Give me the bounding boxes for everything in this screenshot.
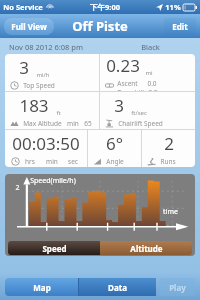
staticText: Speed(mile/h) bbox=[30, 176, 76, 186]
staticText: Speed bbox=[42, 243, 67, 254]
staticText: 2 bbox=[15, 183, 20, 193]
staticText: Full View bbox=[11, 21, 47, 32]
staticText: Angle bbox=[106, 157, 124, 166]
staticText: Ascent bbox=[117, 79, 138, 88]
staticText: Black bbox=[141, 42, 160, 52]
staticText: ft/sec bbox=[131, 109, 147, 117]
button[interactable]: Play bbox=[159, 278, 195, 296]
staticText: 下午9:00 bbox=[90, 2, 120, 12]
staticText: Max Altitude bbox=[23, 119, 62, 128]
staticText: time bbox=[163, 207, 178, 217]
staticText: 6° bbox=[106, 132, 123, 155]
staticText: mi/h bbox=[36, 71, 50, 79]
staticText: Chairlift Speed bbox=[118, 119, 163, 128]
staticText: Runs bbox=[160, 157, 176, 166]
staticText: Edit bbox=[172, 21, 188, 32]
staticText: 65 bbox=[84, 119, 92, 128]
button[interactable]: Edit bbox=[164, 18, 196, 35]
staticText: 11% bbox=[165, 2, 181, 12]
staticText: sec bbox=[68, 157, 78, 166]
staticText: 00:03:50 bbox=[12, 132, 80, 155]
staticText: ft bbox=[56, 109, 61, 117]
staticText: hrs bbox=[25, 157, 35, 166]
staticText: 0.2 bbox=[148, 88, 158, 91]
staticText: mi bbox=[145, 69, 153, 77]
staticText: 2 bbox=[164, 132, 174, 155]
button[interactable]: Speed bbox=[8, 241, 100, 255]
staticText: 0.0 bbox=[147, 79, 157, 88]
staticText: Downhill bbox=[117, 88, 144, 91]
staticText: Nov 08 2012 6:08 pm bbox=[9, 42, 83, 52]
button[interactable]: Full View bbox=[4, 18, 54, 35]
staticText: 3 bbox=[19, 56, 29, 79]
button[interactable]: Data bbox=[79, 278, 156, 296]
staticText: Map bbox=[33, 282, 51, 293]
staticText: min bbox=[46, 157, 58, 166]
staticText: Data bbox=[108, 282, 127, 293]
staticText: 183 bbox=[19, 94, 49, 117]
staticText: 3 bbox=[114, 94, 124, 117]
staticText: 0.23 bbox=[106, 54, 140, 77]
staticText: Play bbox=[169, 282, 186, 293]
staticText: Top Speed bbox=[23, 81, 55, 90]
button[interactable]: Map bbox=[5, 278, 78, 296]
staticText: No Service bbox=[3, 2, 43, 12]
staticText: Off Piste bbox=[72, 17, 128, 35]
staticText: min bbox=[67, 119, 79, 128]
button[interactable]: Altitude bbox=[100, 241, 192, 255]
staticText: Altitude bbox=[130, 243, 163, 254]
